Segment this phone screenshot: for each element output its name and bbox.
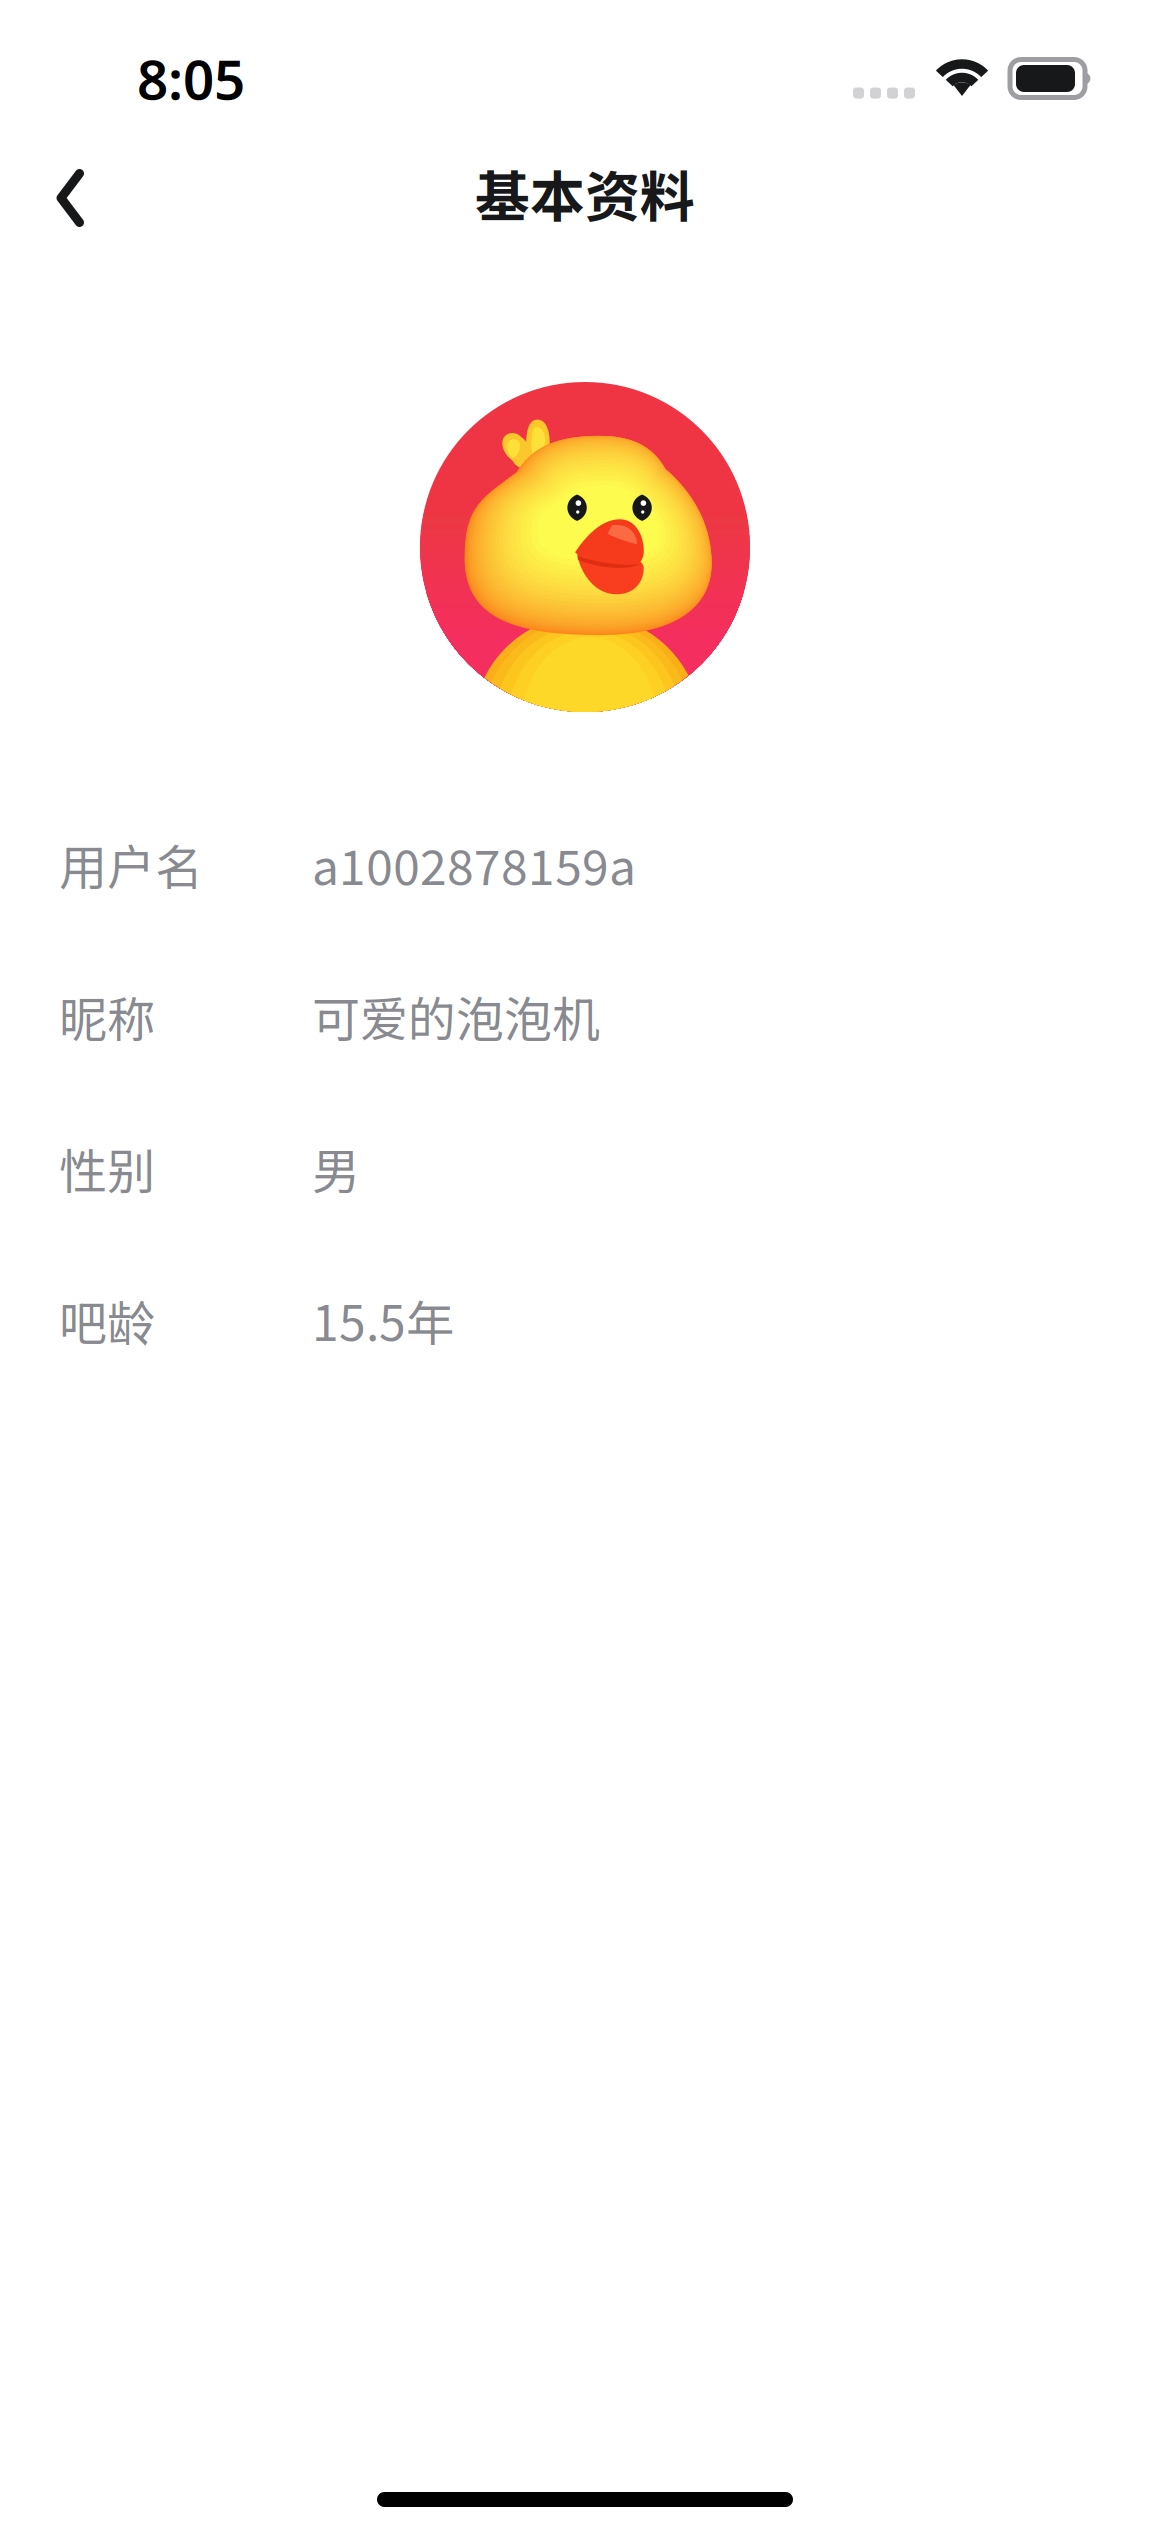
staticText: 男 xyxy=(312,1133,360,1203)
staticText: 可爱的泡泡机 xyxy=(312,981,600,1051)
button[interactable]: Back xyxy=(22,150,118,246)
staticText: 昵称 xyxy=(59,981,155,1051)
staticText: 基本资料 xyxy=(475,153,695,233)
staticText: 8:05 xyxy=(137,42,245,115)
staticText: 性别 xyxy=(59,1133,155,1203)
staticText: a1002878159a xyxy=(312,829,636,899)
staticText: 用户名 xyxy=(59,829,203,899)
staticText: 吧龄 xyxy=(59,1285,155,1355)
staticText: 15.5年 xyxy=(312,1285,454,1355)
